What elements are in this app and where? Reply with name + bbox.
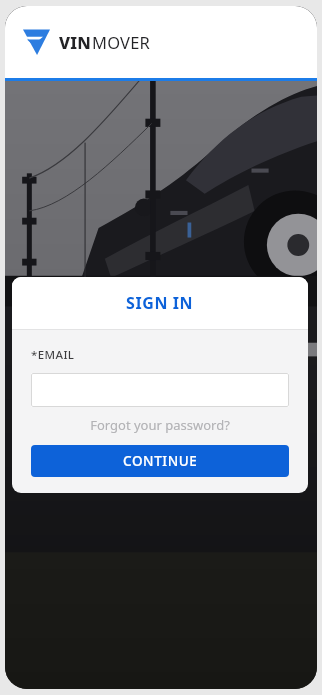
staticText: Forgot your password?: [90, 416, 230, 434]
button[interactable]: [31, 373, 289, 407]
other: VinMover logo: [23, 29, 50, 55]
staticText: VIN: [59, 31, 92, 53]
staticText: CONTINUE: [123, 452, 198, 470]
staticText: *EMAIL: [31, 347, 75, 363]
button[interactable]: Forgot your password?: [31, 412, 289, 438]
button[interactable]: CONTINUE: [31, 445, 289, 477]
staticText: SIGN IN: [126, 292, 194, 314]
staticText: MOVER: [92, 31, 151, 53]
button[interactable]: VinMover logo: [23, 29, 151, 55]
